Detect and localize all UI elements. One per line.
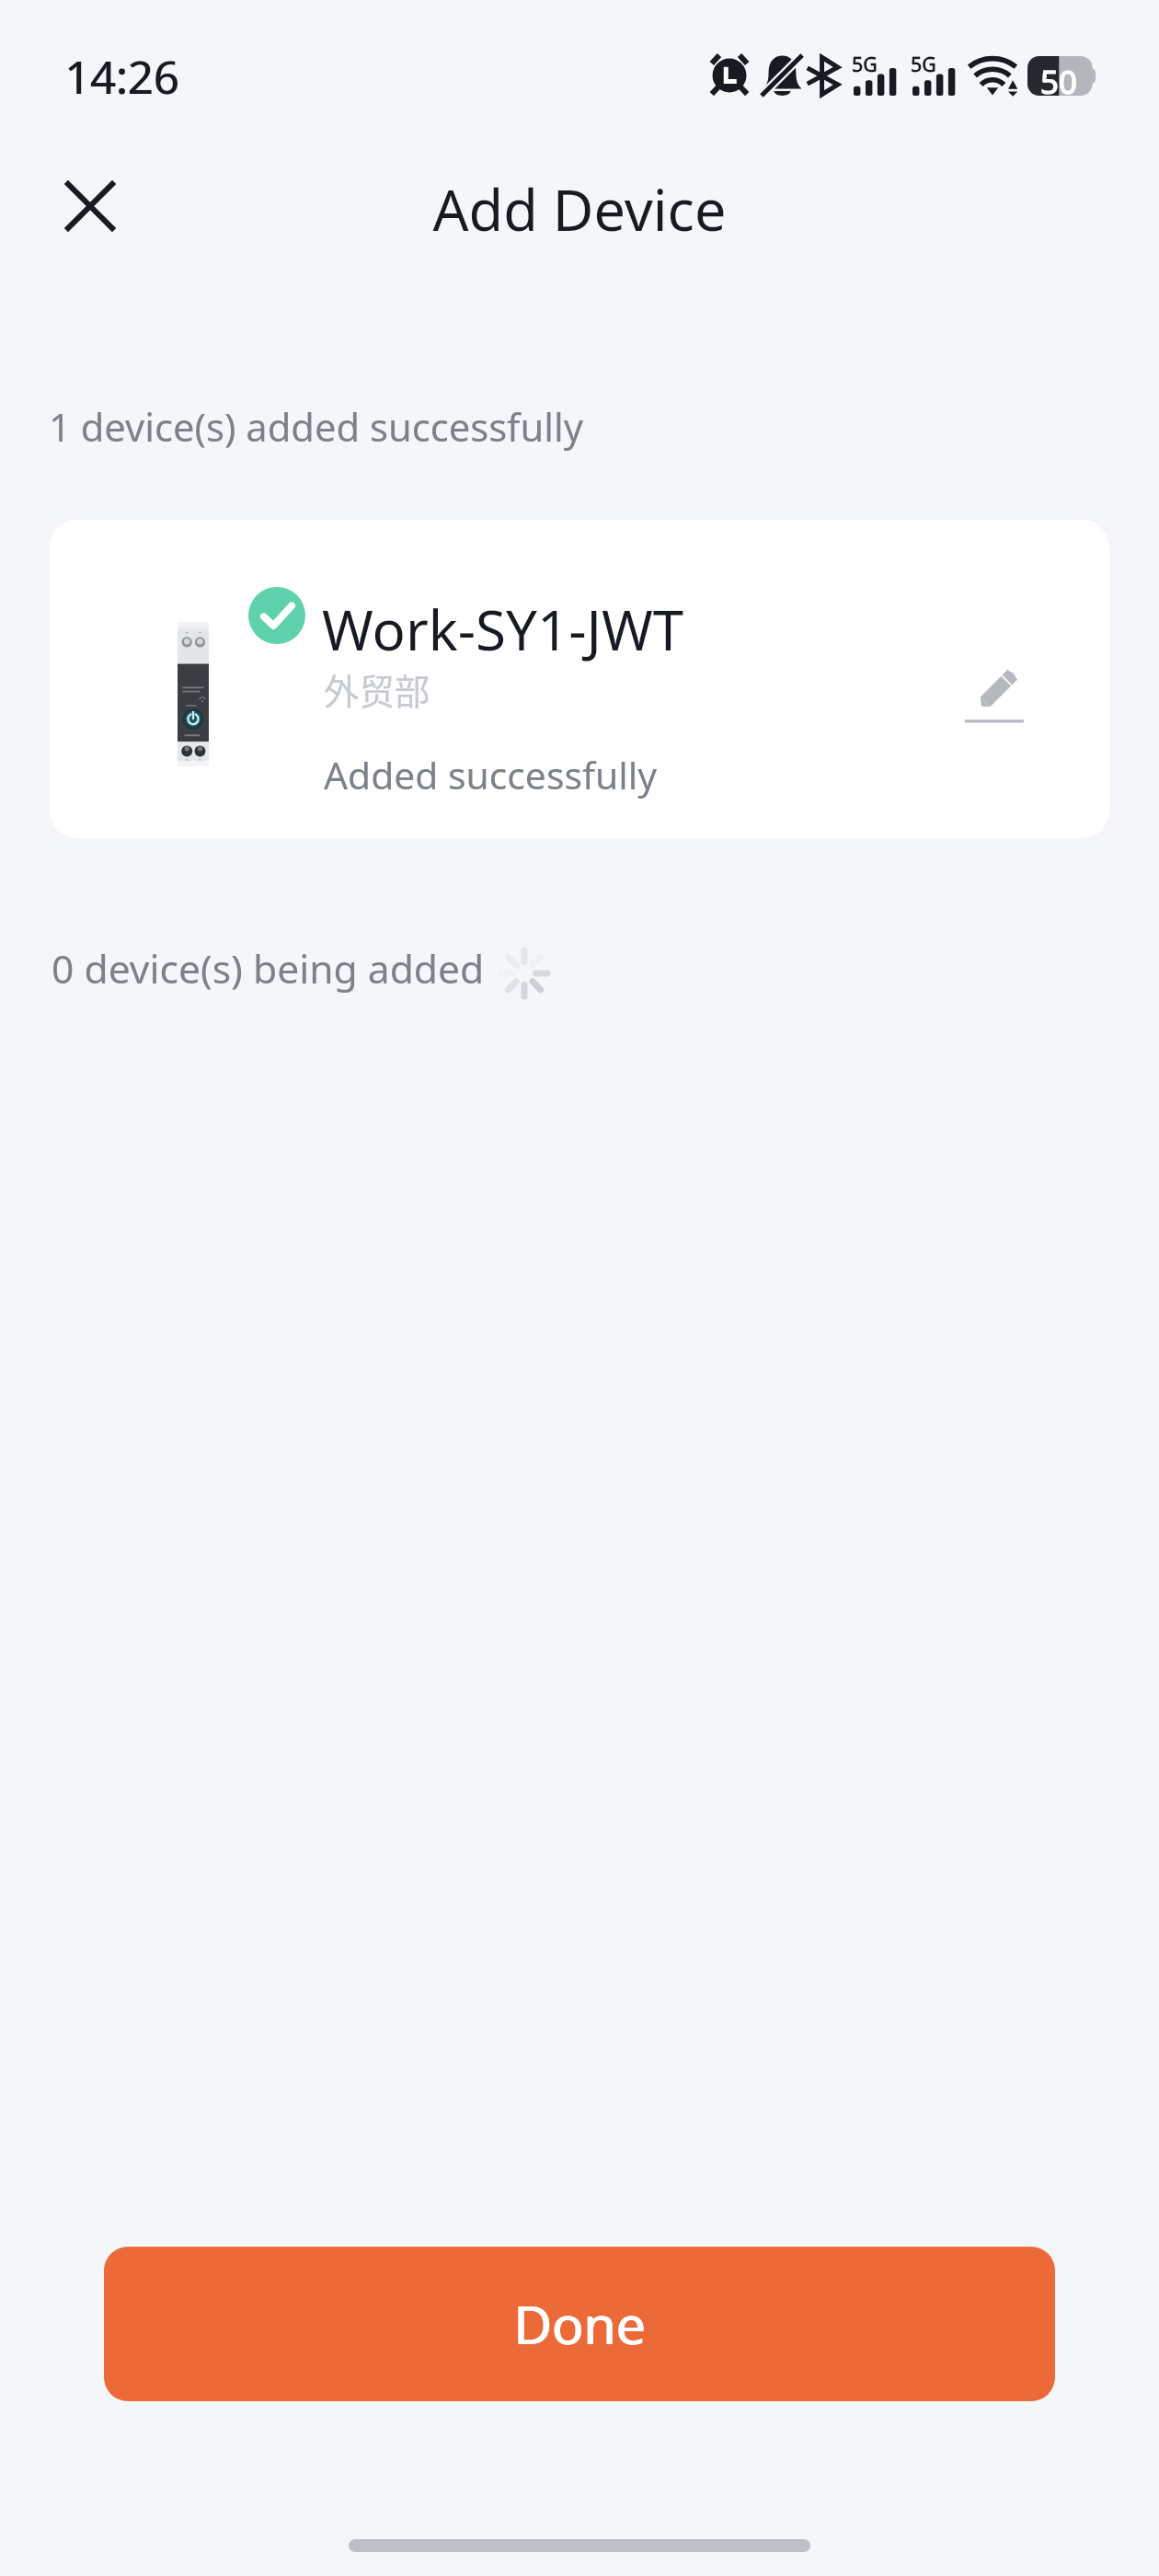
staticText: 14:26	[65, 46, 180, 107]
staticText: 5G	[911, 51, 936, 77]
staticText: 外贸部	[324, 663, 430, 715]
button[interactable]: Done	[104, 2247, 1055, 2401]
staticText: 1 device(s) added successfully	[49, 400, 583, 453]
staticText: 50	[1040, 60, 1077, 99]
staticText: Done	[513, 2288, 646, 2360]
staticText: Added successfully	[324, 749, 658, 800]
staticText: Done	[514, 2288, 647, 2360]
button[interactable]: Close	[50, 166, 131, 247]
staticText: 14:26	[64, 46, 179, 107]
button[interactable]: Edit name	[944, 645, 1045, 746]
staticText: 5G	[852, 51, 878, 77]
staticText: 0 device(s) being added	[52, 941, 485, 995]
staticText: Add Device	[0, 171, 1159, 247]
button[interactable]: Work-SY1-JWT	[50, 520, 1109, 838]
staticText: Work-SY1-JWT	[322, 592, 684, 667]
